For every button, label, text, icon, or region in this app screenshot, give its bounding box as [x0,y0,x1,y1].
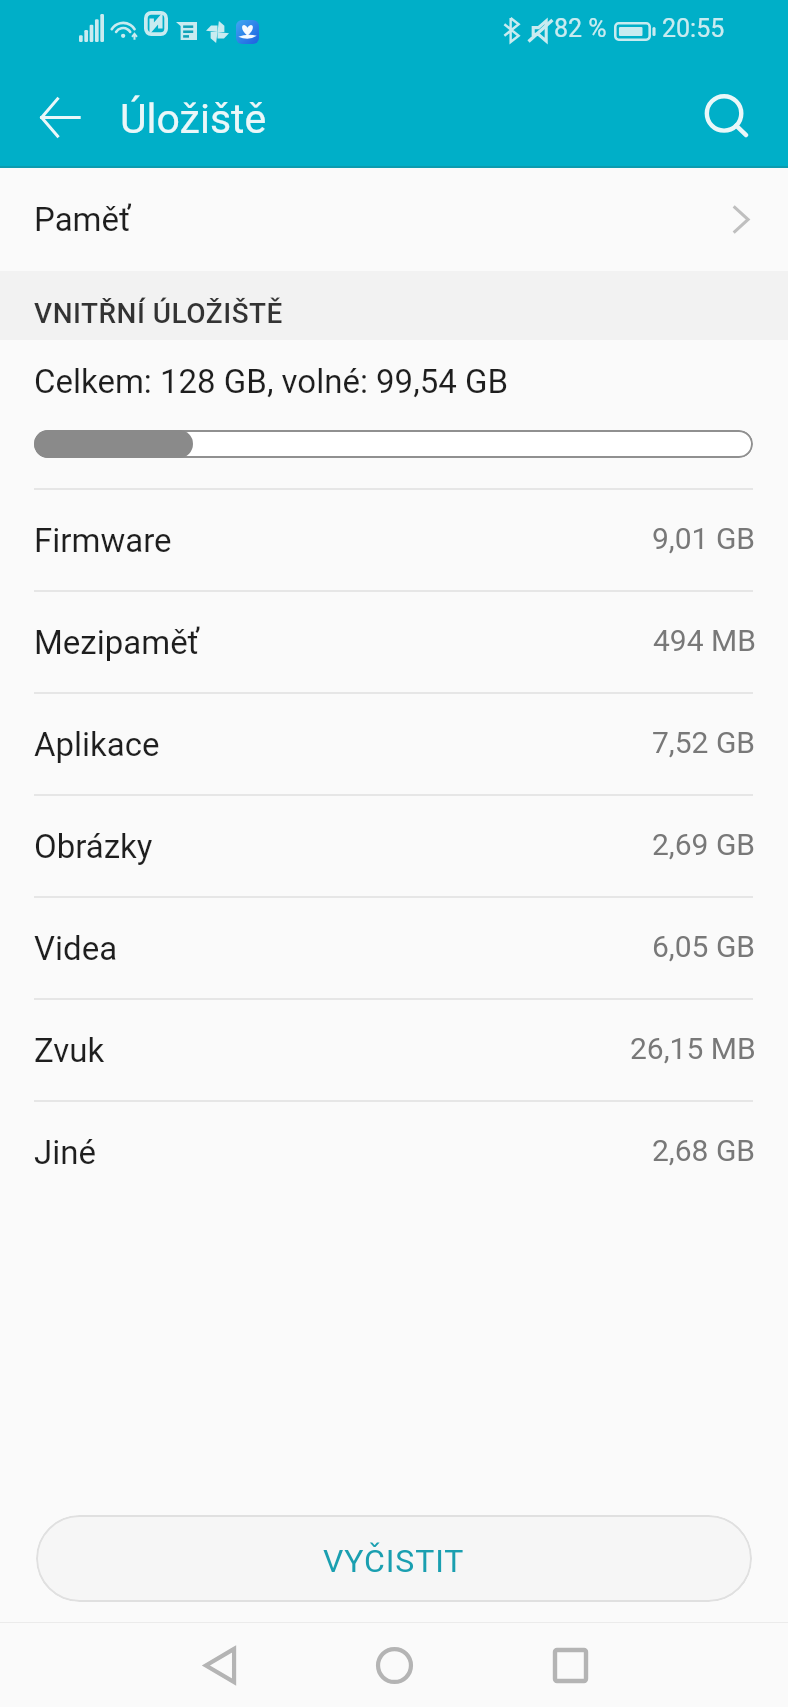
staticText: Obrázky [34,827,153,866]
staticText: Paměť [34,200,131,239]
staticText: Firmware [34,521,172,560]
staticText: Mezipaměť [34,623,200,662]
button[interactable]: Zvuk [0,1000,788,1100]
button[interactable]: Mezipaměť [0,592,788,692]
button[interactable]: Back [180,1623,260,1707]
staticText: Videa [34,929,118,968]
staticText: 6,05 GB [652,929,756,964]
button[interactable]: Obrázky [0,796,788,896]
staticText: VNITŘNÍ ÚLOŽIŠTĚ [34,297,283,330]
staticText: 82 % [554,14,607,43]
button[interactable]: Paměť [0,168,788,271]
staticText: 2,69 GB [652,827,756,862]
button[interactable]: Recents [530,1623,610,1707]
staticText: VYČISTIT [323,1542,465,1580]
button[interactable]: Jiné [0,1102,788,1202]
button[interactable]: Home [354,1623,434,1707]
staticText: 26,15 MB [630,1031,756,1066]
staticText: Aplikace [34,725,160,764]
button[interactable]: VYČISTIT [36,1515,752,1602]
staticText: Celkem: 128 GB, volné: 99,54 GB [34,362,508,401]
button[interactable]: Videa [0,898,788,998]
staticText: Jiné [34,1133,96,1172]
button[interactable]: Firmware [0,490,788,590]
button[interactable]: Aplikace [0,694,788,794]
button[interactable]: Search [685,75,769,159]
staticText: 7,52 GB [652,725,756,760]
staticText: 2,68 GB [652,1133,756,1168]
button[interactable]: Back [18,75,102,159]
staticText: Zvuk [34,1031,105,1070]
staticText: 494 MB [653,623,756,658]
staticText: Úložiště [120,95,267,143]
staticText: 20:55 [662,14,725,43]
staticText: 9,01 GB [652,521,756,556]
